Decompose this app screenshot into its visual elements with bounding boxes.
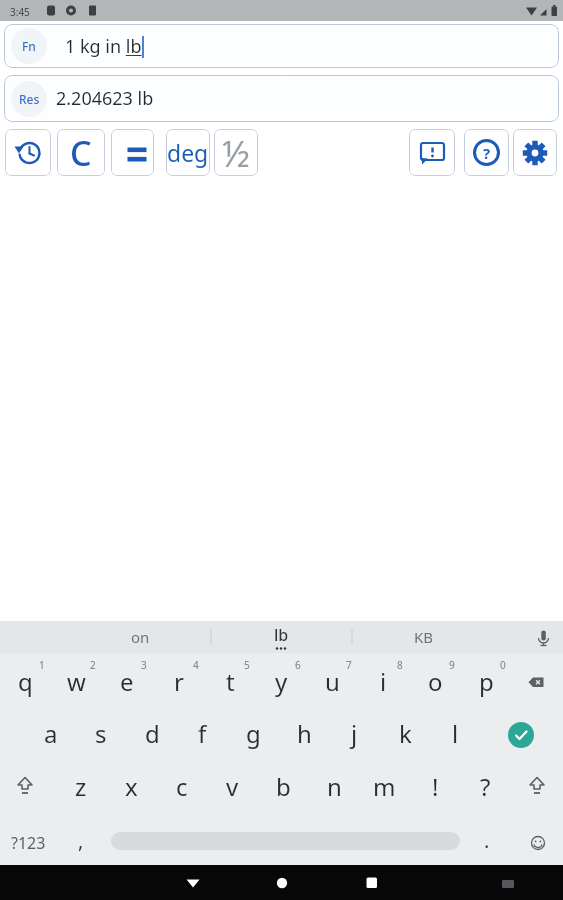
staticText: g xyxy=(246,717,261,750)
staticText: ! xyxy=(432,770,439,803)
staticText: k xyxy=(399,717,412,750)
staticText: y xyxy=(275,665,288,698)
staticText: Fn xyxy=(22,38,36,54)
button[interactable] xyxy=(518,823,558,863)
button[interactable]: y xyxy=(257,661,305,701)
staticText: p xyxy=(479,665,494,698)
staticText: u xyxy=(325,665,340,698)
staticText: 2.204623 lb xyxy=(56,86,154,111)
button[interactable] xyxy=(173,865,213,900)
button[interactable] xyxy=(490,867,526,900)
button[interactable]: deg xyxy=(166,129,210,176)
staticText: deg xyxy=(167,137,209,168)
button[interactable] xyxy=(513,129,557,176)
staticText: 7 xyxy=(346,658,352,670)
staticText: . xyxy=(484,827,490,854)
button[interactable] xyxy=(262,865,302,900)
button[interactable]: s xyxy=(77,713,125,753)
staticText: 6 xyxy=(295,658,301,670)
button[interactable]: j xyxy=(330,713,378,753)
button[interactable] xyxy=(517,766,557,806)
staticText: m xyxy=(373,770,396,803)
button[interactable]: o xyxy=(411,661,459,701)
button[interactable] xyxy=(5,766,45,806)
staticText: e xyxy=(120,665,134,698)
button[interactable]: c xyxy=(158,766,206,806)
staticText: , xyxy=(78,827,84,854)
button[interactable]: a xyxy=(27,713,75,753)
button[interactable]: t xyxy=(206,661,254,701)
staticText: 3 xyxy=(141,658,147,670)
button[interactable]: m xyxy=(360,766,408,806)
staticText: 5 xyxy=(244,658,250,670)
button[interactable]: ? xyxy=(464,129,509,176)
staticText: 8 xyxy=(397,658,403,670)
button[interactable]: n xyxy=(310,766,358,806)
button[interactable]: f xyxy=(178,713,226,753)
button[interactable]: ? xyxy=(461,766,509,806)
staticText: d xyxy=(145,717,160,750)
button[interactable]: . xyxy=(463,820,511,860)
staticText: 0 xyxy=(500,658,506,670)
staticText: 9 xyxy=(449,658,455,670)
button[interactable]: Res xyxy=(4,75,559,122)
button[interactable]: r xyxy=(155,661,203,701)
button[interactable]: d xyxy=(128,713,176,753)
staticText: 4 xyxy=(193,658,199,670)
button[interactable] xyxy=(352,865,392,900)
button[interactable]: v xyxy=(208,766,256,806)
button[interactable]: lb xyxy=(261,623,301,647)
button[interactable] xyxy=(5,129,51,176)
button[interactable] xyxy=(111,129,154,176)
button[interactable]: z xyxy=(57,766,105,806)
button[interactable]: k xyxy=(381,713,429,753)
button[interactable]: , xyxy=(57,820,105,860)
staticText: t xyxy=(226,665,235,698)
button[interactable]: i xyxy=(359,661,407,701)
staticText: b xyxy=(276,770,291,803)
staticText: r xyxy=(174,665,184,698)
button[interactable]: x xyxy=(107,766,155,806)
button[interactable]: w xyxy=(52,661,100,701)
staticText: ? xyxy=(483,143,491,163)
button[interactable]: ! xyxy=(411,766,459,806)
staticText: l xyxy=(452,717,459,750)
button[interactable]: e xyxy=(103,661,151,701)
button[interactable]: g xyxy=(229,713,277,753)
staticText: ? xyxy=(480,770,491,803)
button[interactable]: h xyxy=(280,713,328,753)
staticText: C xyxy=(70,130,92,176)
staticText: ½ xyxy=(222,129,250,176)
staticText: o xyxy=(428,665,443,698)
button[interactable]: q xyxy=(1,661,49,701)
button[interactable]: ?123 xyxy=(3,823,53,863)
button[interactable]: u xyxy=(308,661,356,701)
button[interactable]: C xyxy=(57,129,105,176)
staticText: c xyxy=(176,770,188,803)
staticText: v xyxy=(226,770,239,803)
staticText: i xyxy=(380,665,387,698)
button[interactable]: ½ xyxy=(214,129,258,176)
staticText: a xyxy=(44,717,58,750)
button[interactable]: b xyxy=(259,766,307,806)
button[interactable] xyxy=(409,129,455,176)
button[interactable] xyxy=(501,715,541,755)
staticText: lb xyxy=(274,624,289,646)
button[interactable]: on xyxy=(110,623,170,651)
staticText: 1 kg in lb xyxy=(65,34,142,59)
staticText: h xyxy=(297,717,312,750)
staticText: s xyxy=(95,717,107,750)
button[interactable]: p xyxy=(462,661,510,701)
staticText: j xyxy=(351,717,358,750)
staticText: x xyxy=(125,770,138,803)
staticText: n xyxy=(327,770,342,803)
staticText: ?123 xyxy=(11,832,46,854)
button[interactable]: KB xyxy=(394,623,454,651)
button[interactable]: l xyxy=(431,713,479,753)
button[interactable]: Fn xyxy=(4,24,559,68)
staticText: 1 xyxy=(39,658,45,670)
staticText: 3:45 xyxy=(10,5,30,19)
button[interactable] xyxy=(511,663,561,703)
staticText: Res xyxy=(19,91,40,107)
